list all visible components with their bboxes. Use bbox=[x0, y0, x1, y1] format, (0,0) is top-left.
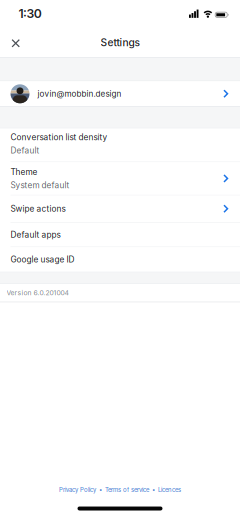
staticText: Default apps bbox=[10, 230, 60, 240]
button[interactable]: Licences bbox=[158, 486, 181, 493]
staticText: Settings bbox=[100, 36, 139, 49]
button[interactable]: jovin@mobbin.design bbox=[0, 81, 240, 106]
staticText: Conversation list density bbox=[10, 132, 107, 142]
staticText: Version 6.0.201004 bbox=[6, 289, 68, 297]
staticText: • bbox=[152, 486, 155, 493]
button[interactable]: Google usage ID bbox=[0, 247, 240, 272]
staticText: jovin@mobbin.design bbox=[37, 89, 121, 99]
staticText: Default bbox=[10, 145, 39, 155]
staticText: Privacy Policy bbox=[59, 486, 96, 493]
button[interactable]: Terms of service bbox=[105, 486, 149, 493]
button[interactable]: Swipe actions bbox=[0, 196, 240, 222]
staticText: System default bbox=[10, 180, 69, 190]
button[interactable]: Conversation list density bbox=[0, 128, 240, 161]
staticText: Terms of service bbox=[105, 486, 149, 493]
staticText: Google usage ID bbox=[10, 254, 74, 264]
staticText: 1:30 bbox=[18, 6, 42, 21]
button[interactable]: Privacy Policy bbox=[59, 486, 96, 493]
button[interactable]: Default apps bbox=[0, 223, 240, 246]
staticText: Swipe actions bbox=[10, 204, 65, 214]
button[interactable]: Theme bbox=[0, 162, 240, 195]
staticText: Theme bbox=[10, 167, 37, 177]
staticText: Licences bbox=[158, 486, 181, 493]
button[interactable]: Close bbox=[0, 28, 30, 58]
staticText: • bbox=[99, 486, 102, 493]
